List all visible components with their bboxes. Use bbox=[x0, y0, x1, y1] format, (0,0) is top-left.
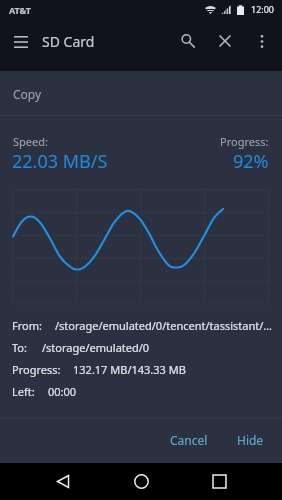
staticText: From: bbox=[12, 318, 42, 333]
button[interactable]: Cancel bbox=[162, 425, 216, 455]
button[interactable]: Back bbox=[48, 466, 78, 496]
staticText: SD Card bbox=[42, 32, 95, 51]
staticText: 132.17 MB/143.33 MB bbox=[73, 362, 186, 377]
staticText: Hide bbox=[237, 432, 264, 448]
staticText: Progress: bbox=[12, 362, 61, 377]
button[interactable]: Search bbox=[174, 27, 202, 55]
button[interactable]: Navigation menu bbox=[8, 29, 34, 55]
button[interactable]: Close bbox=[212, 28, 238, 54]
staticText: To: bbox=[12, 340, 27, 355]
staticText: 92% bbox=[233, 149, 269, 174]
staticText: AT&T bbox=[9, 4, 32, 16]
staticText: 12:00 bbox=[251, 3, 275, 15]
staticText: Cancel bbox=[170, 432, 208, 448]
staticText: Progress: bbox=[220, 134, 269, 149]
staticText: Speed: bbox=[13, 134, 48, 149]
staticText: 00:00 bbox=[48, 384, 77, 399]
staticText: Copy bbox=[13, 86, 42, 102]
button[interactable]: Recent apps bbox=[204, 466, 234, 496]
staticText: Left: bbox=[12, 384, 35, 399]
staticText: /storage/emulated/0/tencent/tassistant/… bbox=[55, 318, 273, 333]
staticText: /storage/emulated/0 bbox=[42, 340, 150, 355]
staticText: 22.03 MB/S bbox=[12, 149, 108, 174]
button[interactable]: Hide bbox=[229, 425, 272, 455]
button[interactable]: More options bbox=[249, 28, 275, 54]
button[interactable]: Home bbox=[126, 466, 156, 496]
